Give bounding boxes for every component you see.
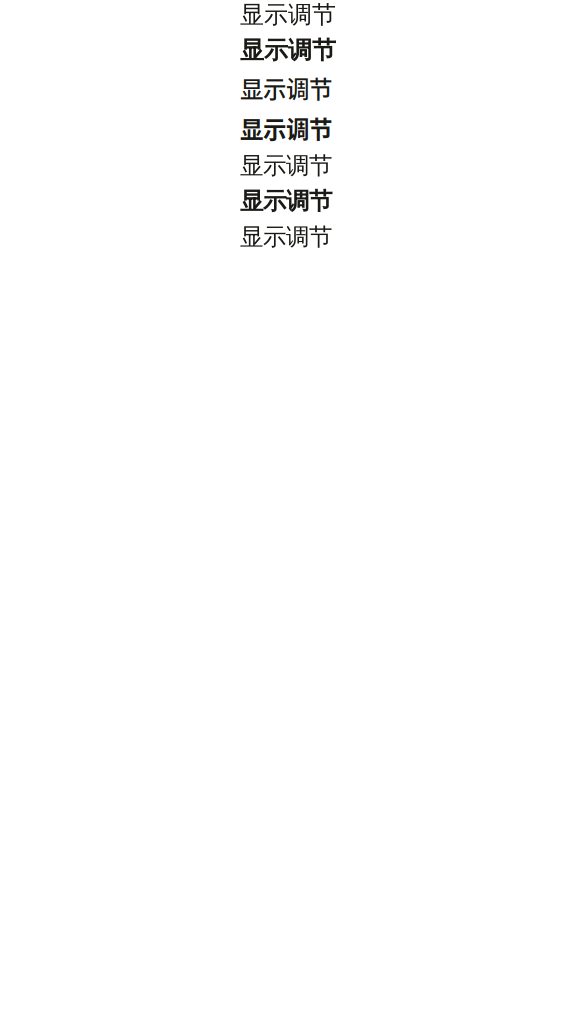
staticText: 显示调节	[240, 35, 336, 65]
staticText: 显示调节	[240, 186, 332, 216]
staticText: 显示调节	[240, 0, 336, 29]
staticText: 显示调节	[240, 111, 332, 145]
staticText: 显示调节	[240, 151, 332, 180]
staticText: 显示调节	[240, 222, 332, 252]
staticText: 显示调节	[240, 71, 332, 105]
